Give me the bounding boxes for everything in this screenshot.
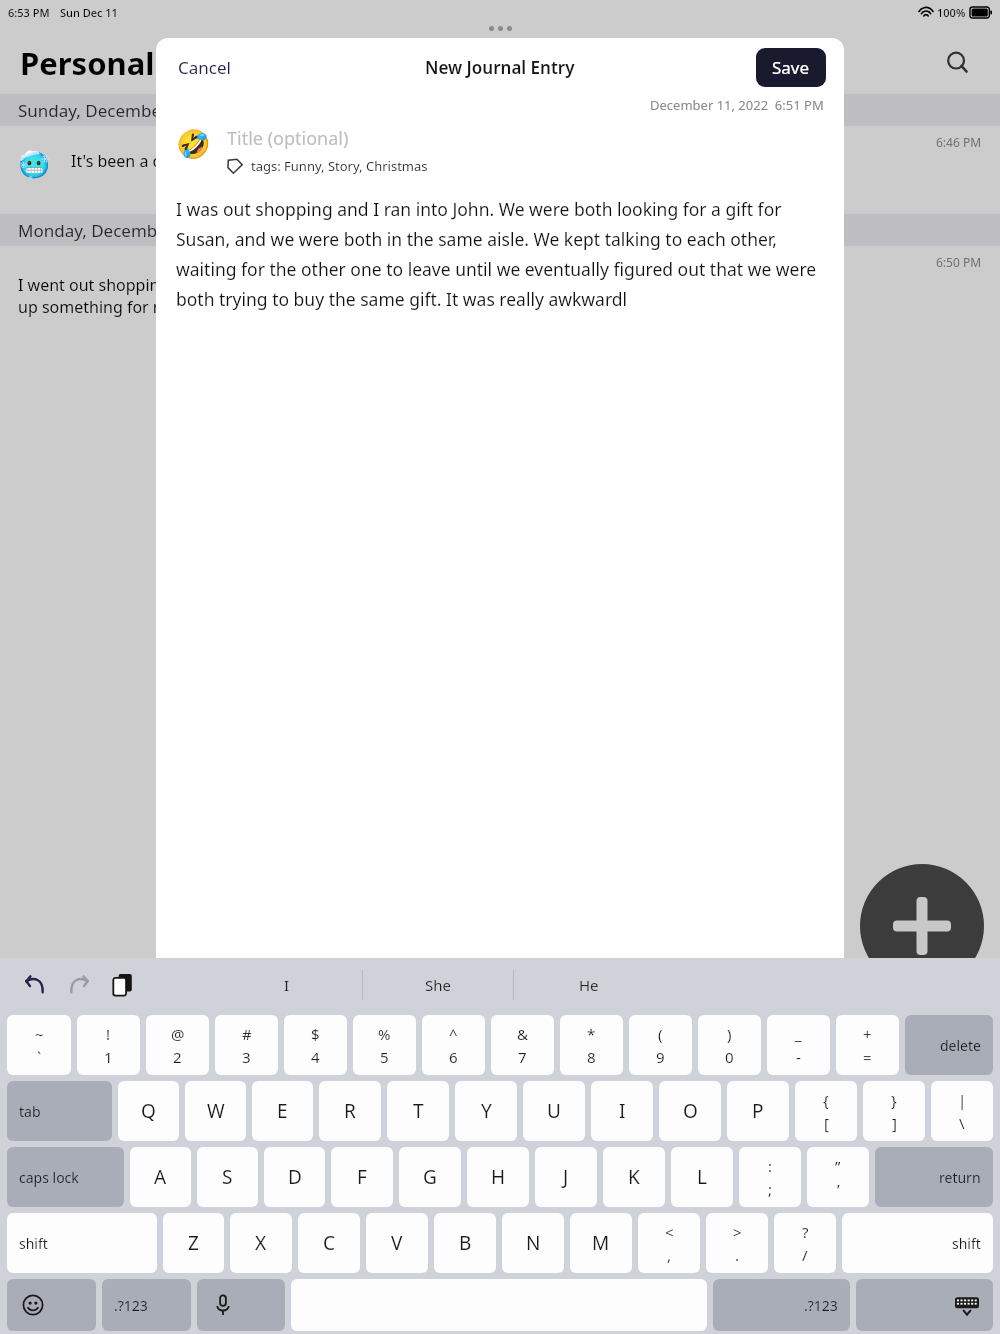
staticText: H xyxy=(491,1164,506,1190)
button[interactable]: R xyxy=(319,1081,381,1141)
button[interactable]: Redo xyxy=(62,968,96,1002)
button[interactable]: ( xyxy=(629,1015,692,1075)
button[interactable]: Dictate xyxy=(197,1279,285,1331)
button[interactable]: Paste xyxy=(106,968,140,1002)
button[interactable]: tab xyxy=(7,1081,112,1141)
staticText: .?123 xyxy=(804,1296,838,1315)
button[interactable]: He xyxy=(514,958,664,1012)
button[interactable]: return xyxy=(875,1147,993,1207)
button[interactable]: Undo xyxy=(18,968,52,1002)
button[interactable]: .?123 xyxy=(102,1279,191,1331)
button[interactable]: J xyxy=(535,1147,597,1207)
button[interactable]: H xyxy=(467,1147,529,1207)
button[interactable]: L xyxy=(671,1147,733,1207)
staticText: .?123 xyxy=(114,1296,148,1315)
staticText: S xyxy=(222,1164,233,1190)
staticText: ^ xyxy=(449,1024,458,1044)
button[interactable]: | xyxy=(931,1081,993,1141)
staticText: Y xyxy=(481,1098,492,1124)
button[interactable]: @ xyxy=(146,1015,209,1075)
button[interactable]: G xyxy=(399,1147,461,1207)
staticText: ; xyxy=(768,1179,773,1199)
button[interactable]: > xyxy=(706,1213,768,1273)
button[interactable]: V xyxy=(366,1213,428,1273)
staticText: M xyxy=(592,1230,610,1256)
staticText: ’ xyxy=(837,1179,840,1199)
button[interactable]: F xyxy=(331,1147,393,1207)
staticText: ” xyxy=(835,1156,841,1176)
staticText: Personal xyxy=(20,42,155,84)
button[interactable]: Save xyxy=(756,48,826,87)
button[interactable]: Title (optional) xyxy=(227,126,349,151)
staticText: Monday, December 12, 2022 xyxy=(18,219,246,242)
button[interactable]: U xyxy=(523,1081,585,1141)
button[interactable]: W xyxy=(185,1081,246,1141)
button[interactable]: : xyxy=(739,1147,801,1207)
button[interactable]: Q xyxy=(118,1081,179,1141)
button[interactable]: + xyxy=(836,1015,899,1075)
button[interactable]: * xyxy=(560,1015,623,1075)
staticText: December 11, 2022 6:51 PM xyxy=(650,96,824,114)
staticText: Sun Dec 11 xyxy=(60,5,118,20)
button[interactable]: } xyxy=(863,1081,925,1141)
button[interactable]: ! xyxy=(77,1015,140,1075)
button[interactable]: She xyxy=(363,958,513,1012)
staticText: return xyxy=(939,1168,981,1187)
button[interactable]: Emoji xyxy=(7,1279,96,1331)
staticText: % xyxy=(378,1024,391,1044)
button[interactable]: $ xyxy=(284,1015,347,1075)
button[interactable]: ~ xyxy=(7,1015,71,1075)
button[interactable]: D xyxy=(264,1147,325,1207)
button[interactable]: .?123 xyxy=(713,1279,850,1331)
staticText: 6:50 PM xyxy=(936,254,982,270)
staticText: New Journal Entry xyxy=(425,56,575,79)
button[interactable]: tags: Funny, Story, Christmas xyxy=(227,157,428,175)
button[interactable]: ? xyxy=(774,1213,836,1273)
button[interactable]: Search xyxy=(936,41,980,85)
button[interactable]: Y xyxy=(455,1081,517,1141)
button[interactable]: ” xyxy=(807,1147,869,1207)
button[interactable]: ) xyxy=(698,1015,761,1075)
button[interactable]: caps lock xyxy=(7,1147,124,1207)
button[interactable]: # xyxy=(215,1015,278,1075)
button[interactable]: < xyxy=(638,1213,700,1273)
button[interactable]: Calendar xyxy=(20,1278,64,1322)
button[interactable]: B xyxy=(434,1213,496,1273)
button[interactable]: A xyxy=(130,1147,191,1207)
staticText: 1 xyxy=(104,1047,113,1067)
button[interactable]: Hide keyboard xyxy=(856,1279,993,1331)
staticText: - xyxy=(796,1047,801,1067)
staticText: 2 xyxy=(173,1047,182,1067)
button[interactable]: P xyxy=(727,1081,789,1141)
button[interactable]: N xyxy=(502,1213,564,1273)
button[interactable]: Z xyxy=(163,1213,224,1273)
button[interactable]: New entry xyxy=(860,864,984,988)
button[interactable]: { xyxy=(795,1081,857,1141)
button[interactable]: % xyxy=(353,1015,416,1075)
staticText: 6:46 PM xyxy=(936,134,982,150)
button[interactable]: I xyxy=(591,1081,653,1141)
button[interactable]: X xyxy=(230,1213,292,1273)
button[interactable]: C xyxy=(298,1213,360,1273)
button[interactable]: O xyxy=(659,1081,721,1141)
staticText: It's been a cold day today. Hopefully it… xyxy=(71,150,411,172)
button[interactable]: delete xyxy=(905,1015,993,1075)
staticText: L xyxy=(697,1164,707,1190)
staticText: @ xyxy=(171,1024,185,1044)
button[interactable]: ^ xyxy=(422,1015,485,1075)
staticText: Title (optional) xyxy=(227,126,349,151)
button[interactable]: S xyxy=(197,1147,258,1207)
button[interactable]: I xyxy=(212,958,362,1012)
button[interactable]: M xyxy=(570,1213,632,1273)
button[interactable]: shift xyxy=(842,1213,993,1273)
button[interactable]: & xyxy=(491,1015,554,1075)
button[interactable]: Cancel xyxy=(176,52,233,83)
button[interactable]: shift xyxy=(7,1213,157,1273)
staticText: } xyxy=(891,1090,897,1110)
button[interactable]: K xyxy=(603,1147,665,1207)
button[interactable]: E xyxy=(252,1081,313,1141)
button[interactable]: T xyxy=(387,1081,449,1141)
staticText: 8 xyxy=(587,1047,596,1067)
button[interactable]: _ xyxy=(767,1015,830,1075)
